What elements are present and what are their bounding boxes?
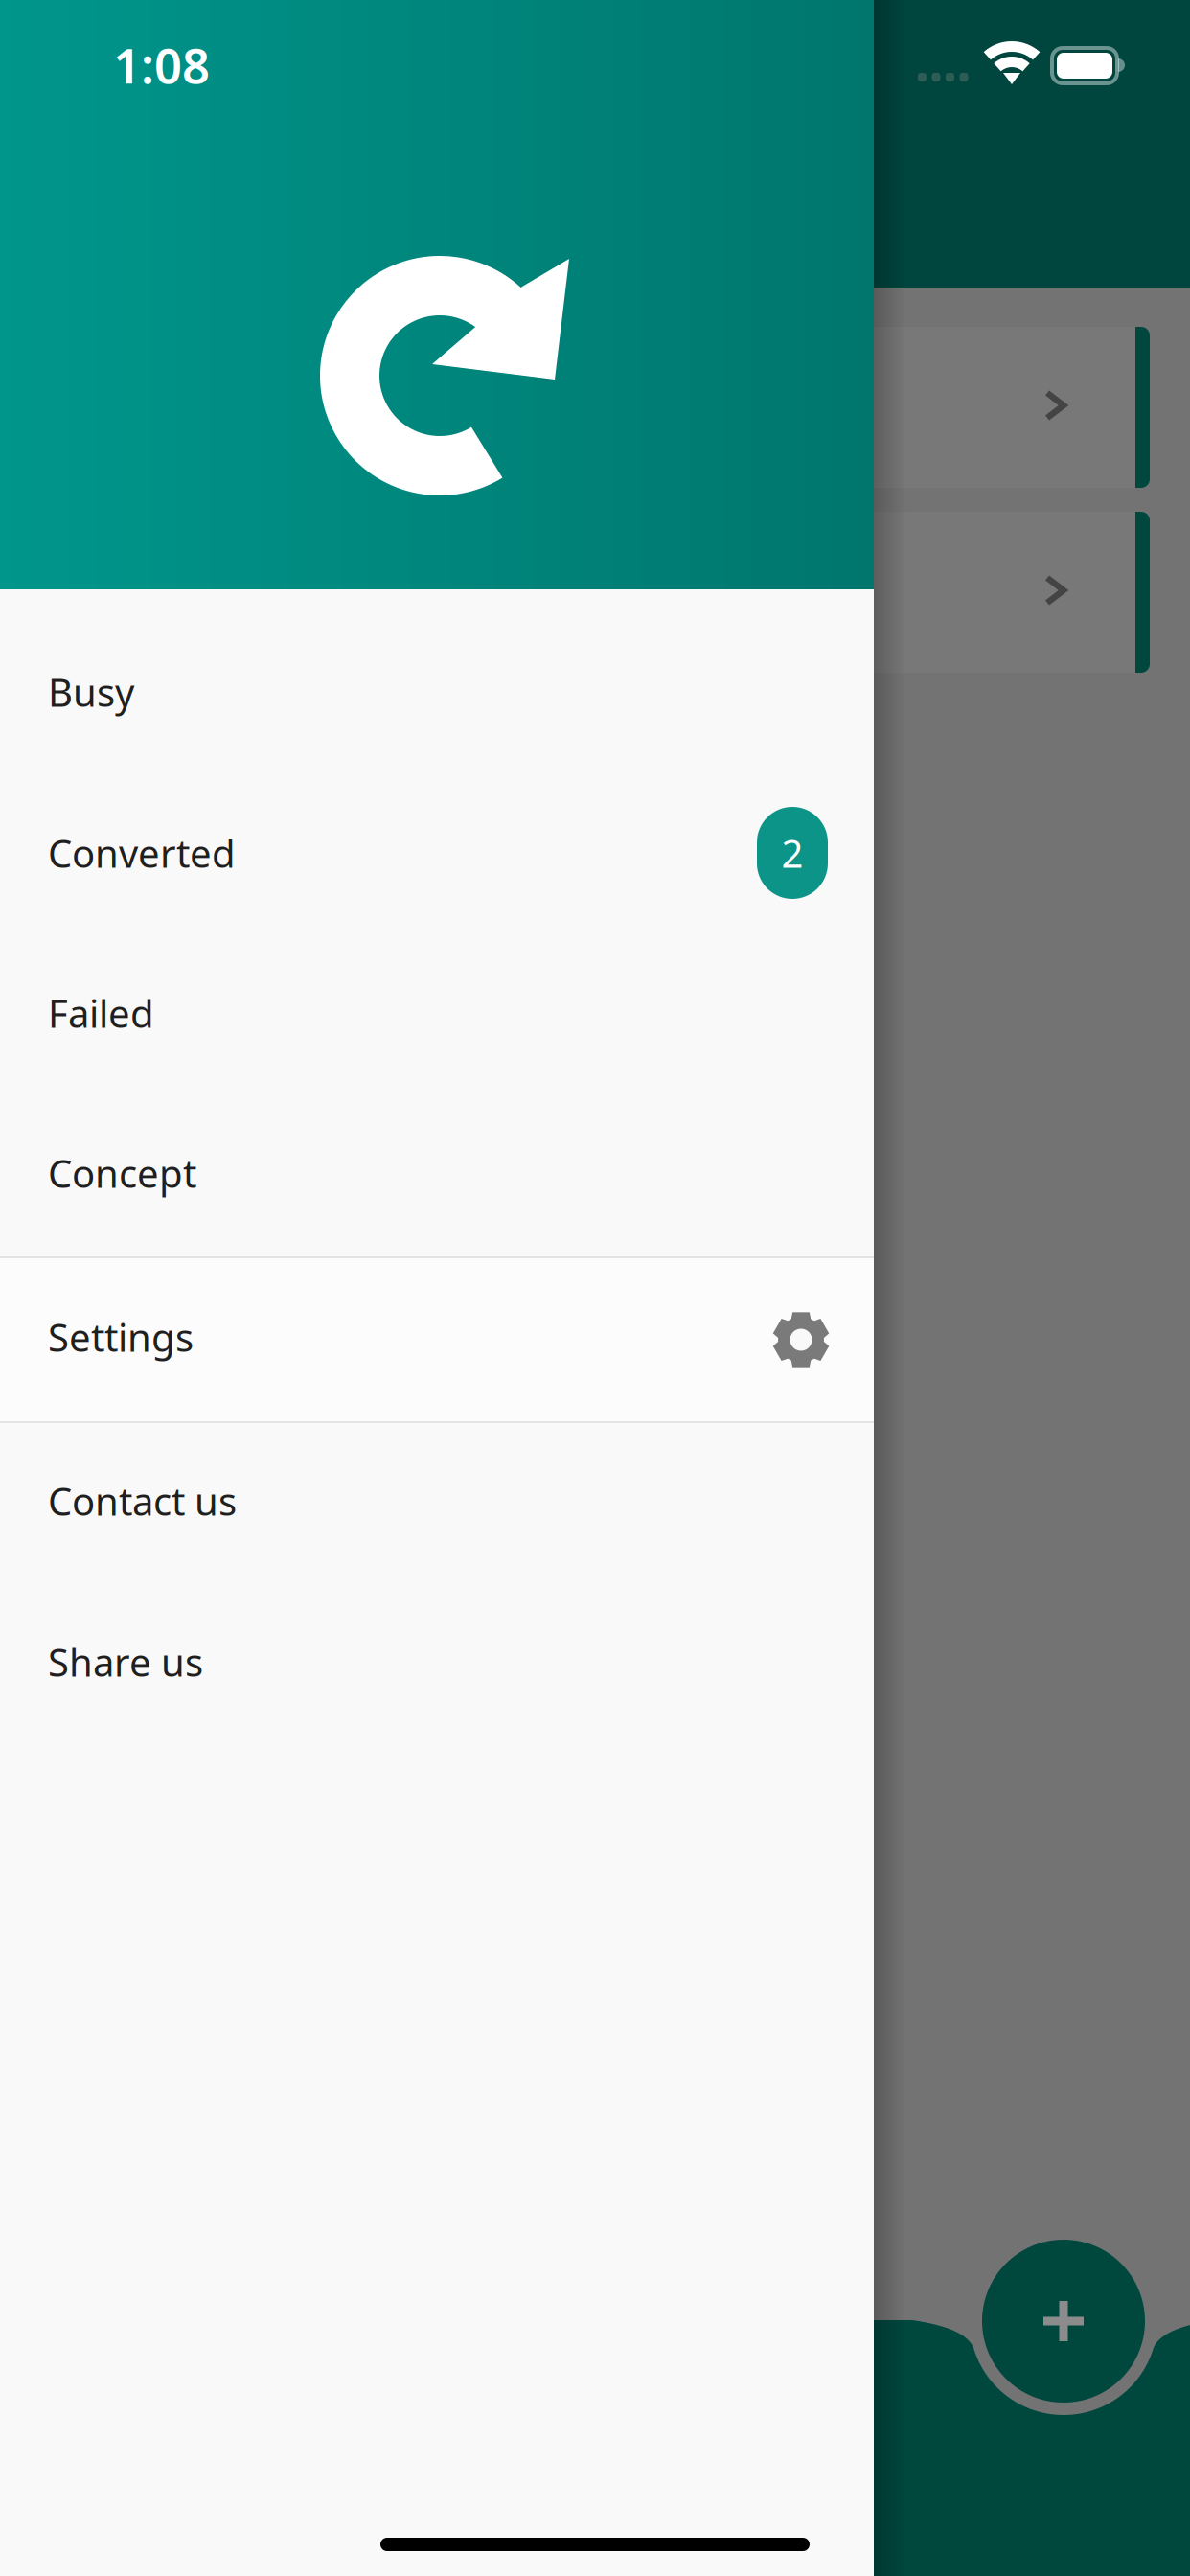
button[interactable]: Open item: [0, 512, 1150, 673]
staticText: Settings: [48, 1311, 194, 1362]
button[interactable]: Share us: [0, 1581, 874, 1742]
button[interactable]: Concept: [0, 1092, 874, 1253]
staticText: 1:08: [113, 33, 210, 97]
staticText: Share us: [48, 1636, 203, 1687]
staticText: Contact us: [48, 1475, 237, 1526]
staticText: Failed: [48, 987, 154, 1038]
button[interactable]: Converted: [0, 772, 874, 933]
button[interactable]: Settings: [0, 1255, 874, 1418]
staticText: Converted: [48, 827, 236, 878]
staticText: Busy: [48, 666, 134, 717]
staticText: 2: [781, 827, 803, 878]
button[interactable]: Open item: [0, 327, 1150, 488]
button[interactable]: Failed: [0, 932, 874, 1093]
button[interactable]: Add: [982, 2240, 1145, 2403]
button[interactable]: Busy: [0, 611, 874, 772]
button[interactable]: Contact us: [0, 1420, 874, 1581]
staticText: Concept: [48, 1148, 196, 1198]
